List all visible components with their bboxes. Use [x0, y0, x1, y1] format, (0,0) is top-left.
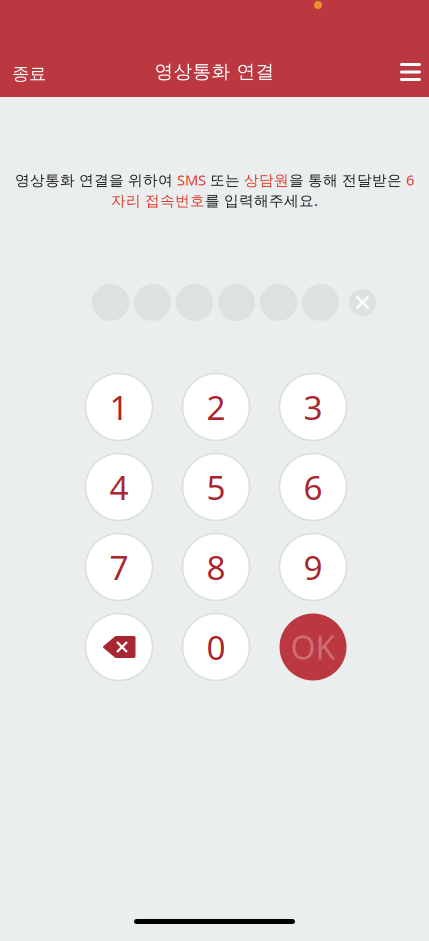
button[interactable]: Clear [349, 284, 376, 321]
button[interactable]: 7 [85, 533, 152, 600]
staticText: OK [290, 626, 335, 668]
staticText: 1 [109, 385, 128, 429]
button[interactable]: 3 [279, 373, 346, 440]
staticText: 영상통화 연결을 위하여 SMS 또는 상담원을 통해 전달받은 6 [15, 170, 414, 189]
staticText: 7 [109, 545, 128, 589]
staticText: 4 [109, 465, 128, 509]
staticText: 3 [303, 385, 322, 429]
button[interactable]: 1 [85, 373, 152, 440]
button[interactable]: 2 [182, 373, 249, 440]
staticText: 8 [206, 545, 225, 589]
button[interactable]: 8 [182, 533, 249, 600]
button[interactable]: Delete [85, 613, 152, 680]
button[interactable]: 종료 [0, 53, 58, 94]
button[interactable]: 4 [85, 453, 152, 520]
button[interactable]: 9 [279, 533, 346, 600]
staticText: 2 [206, 385, 225, 429]
staticText: 종료 [12, 63, 46, 84]
staticText: 0 [206, 625, 225, 669]
button[interactable]: 0 [182, 613, 249, 680]
staticText: 6 [303, 465, 322, 509]
button[interactable]: OK [279, 613, 346, 680]
staticText: 자리 접속번호를 입력해주세요. [111, 190, 318, 210]
button[interactable]: Menu [388, 51, 429, 93]
button[interactable]: 6 [279, 453, 346, 520]
staticText: 5 [206, 465, 225, 509]
button[interactable]: 5 [182, 453, 249, 520]
staticText: 영상통화 연결 [154, 60, 274, 83]
staticText: 9 [303, 545, 322, 589]
